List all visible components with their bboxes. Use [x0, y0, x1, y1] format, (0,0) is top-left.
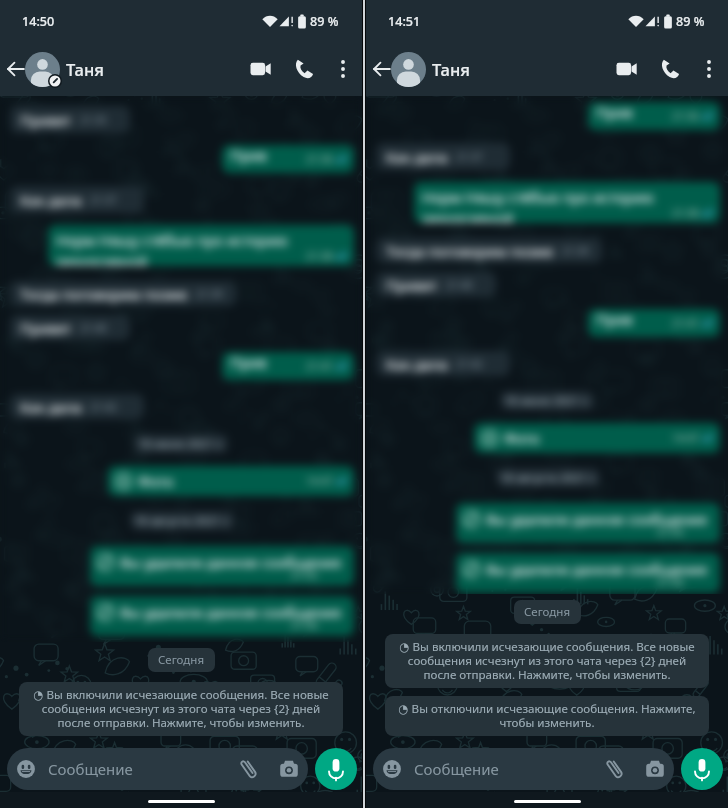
- staticText: 21:38: [672, 206, 699, 220]
- staticText: ◔ Вы отключили исчезающие сообщения. Наж…: [394, 701, 700, 730]
- staticText: Сообщение: [414, 759, 604, 779]
- staticText: Привет: [20, 318, 72, 338]
- staticText: 21:41: [306, 359, 333, 373]
- staticText: Как дела: [386, 147, 448, 167]
- button[interactable]: Вы удалили данное сообщение: [456, 503, 720, 543]
- staticText: 21:39: [196, 287, 223, 301]
- button[interactable]: Норм Няшу стёбъю про историю: [48, 225, 354, 266]
- staticText: 21:37: [90, 193, 117, 207]
- staticText: Сегодня: [158, 652, 205, 668]
- staticText: Привет: [386, 275, 438, 295]
- button[interactable]: Фото: [474, 423, 720, 453]
- button[interactable]: Привет: [10, 106, 130, 133]
- staticText: 89 %: [310, 13, 339, 30]
- button[interactable]: Тогда поговорим позже: [376, 238, 602, 263]
- staticText: Привет: [230, 145, 268, 173]
- staticText: Таня: [432, 58, 470, 80]
- button[interactable]: More options: [326, 52, 360, 86]
- staticText: ◔ Вы включили исчезающие сообщения. Все …: [394, 639, 700, 682]
- staticText: 21:55: [657, 525, 684, 539]
- staticText: 21:42: [90, 400, 117, 414]
- staticText: Вы удалили данное сообщение: [486, 509, 708, 529]
- button[interactable]: Привет: [222, 145, 354, 173]
- button[interactable]: Сообщение: [373, 748, 674, 790]
- staticText: 21:35: [80, 113, 107, 127]
- staticText: 21:39: [562, 244, 589, 258]
- button[interactable]: Voice call: [650, 49, 690, 89]
- staticText: 21:41: [672, 316, 699, 330]
- staticText: Вы удалили данное сообщение: [120, 602, 342, 622]
- staticText: 21:42: [456, 357, 483, 371]
- staticText: 14:50: [22, 13, 55, 30]
- staticText: 21:36: [306, 152, 333, 166]
- staticText: Норм Няшу стёбъю про историю: [56, 230, 288, 250]
- button[interactable]: Voice call: [284, 49, 324, 89]
- staticText: 89 %: [676, 13, 705, 30]
- staticText: Фото: [504, 428, 540, 448]
- staticText: Как дела: [20, 397, 82, 417]
- button[interactable]: Video call: [240, 49, 280, 89]
- button[interactable]: More options: [692, 52, 726, 86]
- button[interactable]: Норм Няшу стёбъю про историю: [414, 182, 720, 223]
- staticText: 21:38: [306, 249, 333, 263]
- staticText: 21:55: [291, 568, 318, 582]
- button[interactable]: Как дела: [10, 394, 144, 419]
- button[interactable]: Back: [368, 55, 396, 83]
- staticText: 18 июня 2021 г.: [138, 436, 225, 452]
- button[interactable]: Как дела: [376, 351, 510, 376]
- staticText: 14:51: [388, 13, 421, 30]
- button[interactable]: Привет: [222, 352, 354, 380]
- staticText: 14:47: [306, 474, 333, 488]
- staticText: Привет: [596, 102, 634, 130]
- button[interactable]: Привет: [588, 309, 720, 337]
- staticText: Норм Няшу стёбъю про историю: [422, 187, 654, 207]
- button[interactable]: Как дела: [376, 143, 510, 170]
- staticText: рекурсивной: [56, 251, 148, 266]
- staticText: 18 августа 2021 г.: [500, 470, 597, 486]
- button[interactable]: Фото: [108, 466, 354, 496]
- staticText: 21:40: [80, 321, 107, 335]
- button[interactable]: Привет: [376, 272, 496, 297]
- staticText: Привет: [230, 352, 268, 380]
- staticText: 14:47: [672, 431, 699, 445]
- button[interactable]: Back: [2, 55, 30, 83]
- staticText: 18 августа 2021 г.: [134, 513, 231, 529]
- button[interactable]: ◔ Вы включили исчезающие сообщения. Все …: [385, 634, 709, 688]
- button[interactable]: Привет: [10, 315, 130, 340]
- button[interactable]: Привет: [588, 102, 720, 130]
- staticText: 18 июня 2021 г.: [504, 393, 591, 409]
- staticText: Тогда поговорим позже: [386, 241, 554, 261]
- staticText: Таня: [66, 58, 104, 80]
- staticText: 21:56: [291, 618, 318, 632]
- button[interactable]: ◔ Вы включили исчезающие сообщения. Все …: [19, 682, 343, 736]
- staticText: Вы удалили данное сообщение: [486, 559, 708, 579]
- button[interactable]: Вы удалили данное сообщение: [90, 596, 354, 636]
- staticText: Фото: [138, 471, 174, 491]
- button[interactable]: Record voice message: [681, 748, 723, 790]
- staticText: Привет: [20, 110, 72, 130]
- button[interactable]: Вы удалили данное сообщение: [90, 546, 354, 586]
- staticText: Тогда поговорим позже: [20, 284, 188, 304]
- button[interactable]: Как дела: [10, 186, 144, 213]
- staticText: 21:37: [456, 150, 483, 164]
- staticText: рекурсивной: [422, 208, 514, 223]
- staticText: Вы удалили данное сообщение: [120, 552, 342, 572]
- staticText: ◔ Вы включили исчезающие сообщения. Все …: [28, 687, 334, 730]
- staticText: Сообщение: [48, 759, 238, 779]
- staticText: Как дела: [386, 354, 448, 374]
- button[interactable]: ◔ Вы отключили исчезающие сообщения. Наж…: [385, 696, 709, 736]
- staticText: 21:56: [657, 575, 684, 589]
- staticText: Как дела: [20, 190, 82, 210]
- staticText: Сегодня: [524, 604, 571, 620]
- staticText: 21:40: [446, 278, 473, 292]
- button[interactable]: Video call: [606, 49, 646, 89]
- staticText: Привет: [596, 309, 634, 337]
- button[interactable]: Тогда поговорим позже: [10, 281, 236, 306]
- staticText: 21:36: [672, 109, 699, 123]
- button[interactable]: Сообщение: [7, 748, 308, 790]
- button[interactable]: Вы удалили данное сообщение: [456, 553, 720, 593]
- button[interactable]: Record voice message: [315, 748, 357, 790]
